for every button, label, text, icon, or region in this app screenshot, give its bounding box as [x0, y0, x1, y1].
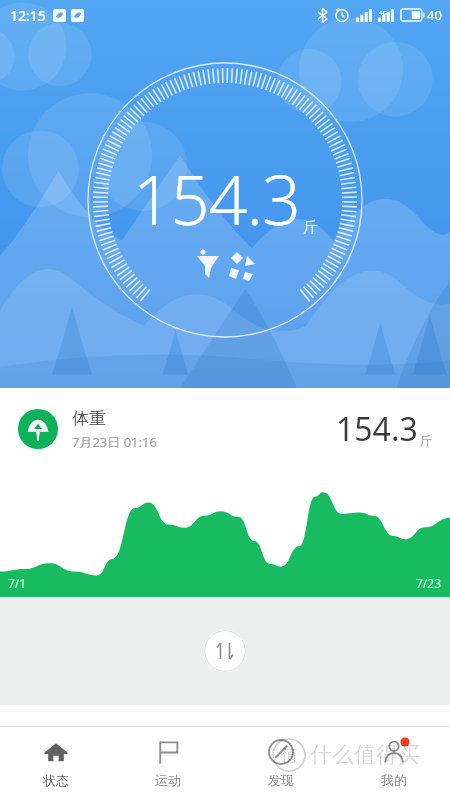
- staticText: 154.3: [133, 152, 300, 245]
- staticText: 7/1: [8, 575, 27, 591]
- staticText: 值: [281, 745, 298, 766]
- staticText: 体重: [72, 408, 106, 429]
- staticText: 7/23: [416, 575, 442, 591]
- button[interactable]: 7/1: [0, 470, 450, 597]
- staticText: 154.3: [336, 407, 418, 451]
- staticText: 运动: [155, 772, 181, 788]
- staticText: 发现: [268, 772, 294, 788]
- staticText: 12:15: [10, 6, 46, 25]
- button[interactable]: 运动: [112, 727, 224, 800]
- button[interactable]: 状态: [0, 727, 112, 800]
- staticText: 我的: [381, 772, 407, 788]
- staticText: 斤: [303, 218, 318, 237]
- staticText: 斤: [420, 433, 432, 448]
- staticText: 状态: [43, 772, 69, 788]
- staticText: 什么值得买: [310, 741, 420, 769]
- button[interactable]: 我的: [337, 727, 450, 800]
- button[interactable]: 体重: [0, 388, 450, 470]
- staticText: 40: [427, 6, 442, 24]
- staticText: 7月23日 01:16: [72, 433, 157, 451]
- button[interactable]: 发现: [224, 727, 337, 800]
- button[interactable]: Switch chart: [204, 630, 246, 672]
- staticText: 4G: [379, 9, 387, 17]
